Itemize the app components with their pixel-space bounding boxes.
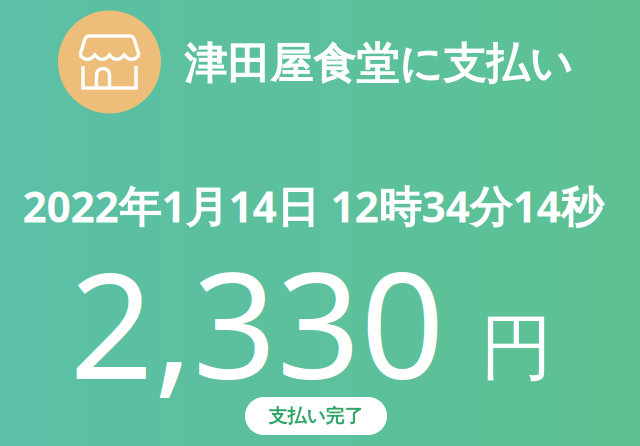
staticText: 円 (480, 304, 552, 392)
button[interactable]: 支払い完了 (245, 397, 387, 435)
staticText: 2,330 (69, 225, 444, 419)
staticText: 津田屋食堂に支払い (184, 38, 573, 90)
staticText: 2022年1月14日 12時34分14秒 (22, 178, 603, 234)
staticText: 支払い完了 (268, 404, 363, 427)
